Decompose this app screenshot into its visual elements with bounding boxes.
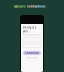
staticText: Exclusive bbox=[14, 5, 26, 8]
staticText: notifications bbox=[27, 5, 45, 8]
staticText: Resend code bbox=[27, 57, 37, 59]
button[interactable]: Resend code bbox=[23, 57, 41, 59]
staticText: Enter the code we sent you bbox=[23, 34, 41, 36]
button[interactable]: Continue bbox=[23, 51, 41, 55]
staticText: Verify it's you bbox=[23, 26, 36, 33]
staticText: Continue bbox=[25, 51, 39, 55]
